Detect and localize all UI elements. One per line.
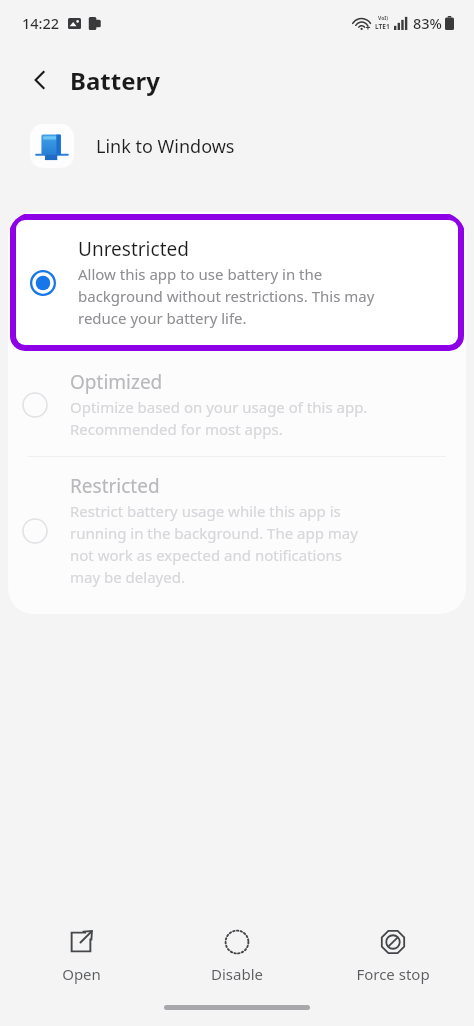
other: Open [68, 929, 94, 955]
other: Force stop [380, 929, 406, 955]
staticText: 83% [413, 13, 442, 33]
staticText: Battery [70, 64, 160, 97]
staticText: Restrict battery usage while this app is… [70, 501, 358, 588]
button[interactable]: Unrestricted [10, 214, 464, 351]
staticText: LTE1 [375, 22, 390, 31]
button[interactable]: Restricted [8, 457, 466, 604]
staticText: Optimized [70, 369, 163, 395]
button[interactable]: Back [16, 56, 64, 104]
button[interactable]: Link to Windows [0, 114, 474, 178]
other: Disable [224, 929, 250, 955]
button[interactable]: Force stop [318, 925, 468, 988]
button[interactable]: Open [6, 925, 156, 988]
button[interactable]: Optimized [8, 353, 466, 456]
staticText: Unrestricted [78, 236, 189, 262]
staticText: Open [62, 964, 101, 984]
staticText: Disable [211, 964, 263, 984]
staticText: 14:22 [22, 13, 60, 33]
button[interactable]: Disable [162, 925, 312, 988]
staticText: VoI) [378, 15, 388, 22]
staticText: Allow this app to use battery in the bac… [78, 264, 375, 329]
staticText: Restricted [70, 473, 160, 499]
staticText: Force stop [356, 964, 430, 984]
staticText: Optimize based on your usage of this app… [70, 397, 368, 440]
staticText: Link to Windows [96, 134, 235, 159]
